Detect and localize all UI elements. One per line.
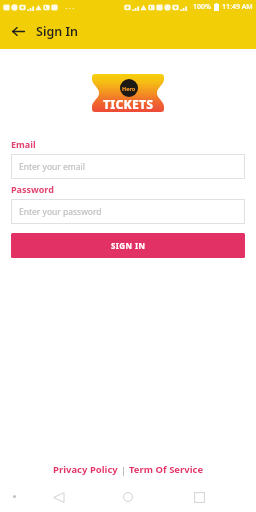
button[interactable]: Back (0, 14, 36, 49)
staticText: TICKETS (103, 96, 154, 113)
button[interactable]: Home (115, 484, 141, 510)
staticText: Enter your email (19, 161, 85, 173)
button[interactable]: SIGN IN (11, 233, 245, 258)
staticText: 100% (193, 2, 211, 12)
staticText: Hero (122, 85, 136, 92)
button[interactable]: Privacy Policy (50, 461, 121, 478)
staticText: Enter your password (19, 206, 102, 218)
button[interactable]: Term Of Service (126, 461, 207, 478)
staticText: Term Of Service (129, 463, 204, 476)
button[interactable]: Enter your password (11, 199, 245, 224)
staticText: Password (11, 183, 54, 195)
button[interactable]: Enter your email (11, 154, 245, 179)
staticText: Email (11, 138, 36, 150)
button[interactable]: Back (45, 484, 71, 510)
staticText: Privacy Policy (53, 463, 118, 476)
staticText: SIGN IN (111, 240, 146, 251)
button[interactable]: Recent apps (186, 484, 212, 510)
staticText: 11:49 AM (222, 2, 253, 12)
staticText: | (121, 464, 126, 476)
staticText: Sign In (36, 23, 79, 40)
